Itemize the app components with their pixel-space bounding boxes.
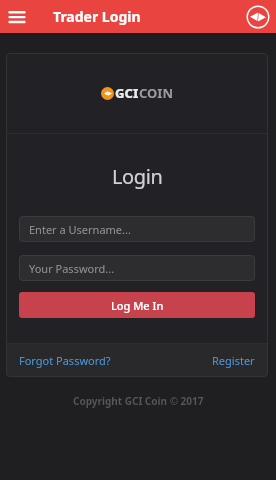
button[interactable]: Register	[212, 353, 255, 368]
button[interactable]: Your Password...	[19, 255, 255, 281]
staticText: COIN	[139, 84, 173, 102]
staticText: Your Password...	[29, 261, 115, 276]
button[interactable]	[243, 2, 273, 32]
staticText: GCI	[115, 84, 139, 102]
button[interactable]: Forgot Password?	[19, 353, 111, 368]
staticText: Enter a Username...	[29, 222, 131, 237]
button[interactable]: Log Me In	[19, 292, 255, 318]
staticText: Login	[112, 163, 163, 190]
staticText: Trader Login	[53, 7, 141, 26]
button[interactable]	[9, 5, 33, 29]
button[interactable]: Enter a Username...	[19, 216, 255, 242]
staticText: Copyright GCI Coin © 2017	[73, 394, 204, 408]
staticText: Log Me In	[111, 298, 164, 313]
